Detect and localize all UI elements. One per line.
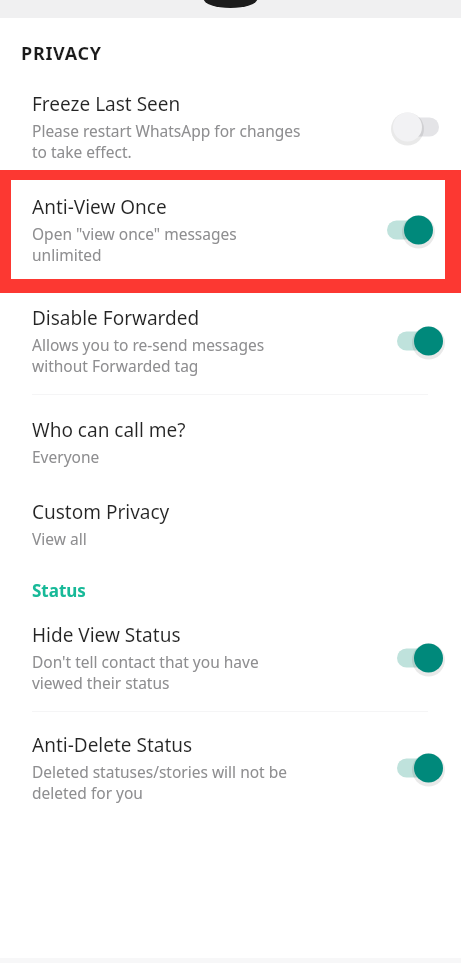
button[interactable]: Disable Forwarded: [0, 293, 461, 394]
button[interactable]: Anti-View Once: [377, 207, 443, 253]
button[interactable]: Anti-View Once: [11, 180, 445, 279]
staticText: Open "view once" messages unlimited: [32, 223, 237, 265]
staticText: Anti-Delete Status: [32, 732, 193, 758]
staticText: Please restart WhatsApp for changes to t…: [32, 120, 301, 162]
staticText: Allows you to re-send messages without F…: [32, 334, 265, 376]
button[interactable]: Anti-Delete Status: [0, 712, 461, 819]
button[interactable]: Anti-Delete Status: [387, 745, 453, 791]
staticText: Deleted statuses/stories will not be del…: [32, 761, 288, 803]
button[interactable]: Hide View Status: [0, 602, 461, 711]
staticText: Hide View Status: [32, 622, 181, 648]
staticText: Status: [32, 579, 86, 602]
staticText: PRIVACY: [21, 41, 102, 66]
button[interactable]: Freeze Last Seen: [0, 66, 461, 170]
staticText: Don't tell contact that you have viewed …: [32, 651, 259, 693]
button[interactable]: Custom Privacy: [0, 479, 461, 559]
button[interactable]: Disable Forwarded: [387, 318, 453, 364]
staticText: View all: [32, 528, 87, 549]
staticText: Disable Forwarded: [32, 305, 200, 331]
button[interactable]: Hide View Status: [387, 635, 453, 681]
staticText: Anti-View Once: [32, 194, 167, 220]
button[interactable]: Freeze Last Seen: [387, 104, 453, 150]
staticText: Who can call me?: [32, 417, 186, 443]
staticText: Freeze Last Seen: [32, 91, 181, 117]
staticText: Everyone: [32, 446, 100, 467]
staticText: Custom Privacy: [32, 499, 170, 525]
button[interactable]: Who can call me?: [0, 395, 461, 479]
